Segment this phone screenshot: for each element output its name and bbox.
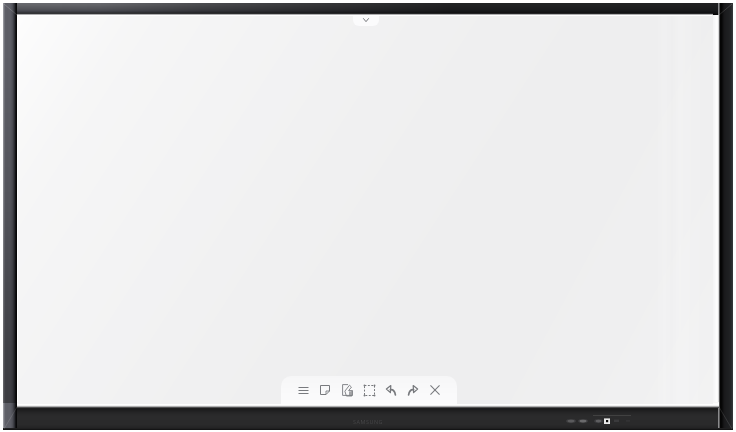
button[interactable]: Select area (358, 379, 380, 401)
button[interactable]: Menu (292, 379, 314, 401)
button[interactable]: New note (314, 379, 336, 401)
staticText: SAMSUNG (353, 418, 384, 425)
button[interactable]: Undo (380, 379, 402, 401)
button[interactable]: Redo (402, 379, 424, 401)
button[interactable]: Close (424, 379, 446, 401)
button[interactable]: Touch tool (336, 379, 358, 401)
button[interactable]: Expand panel (353, 16, 379, 26)
